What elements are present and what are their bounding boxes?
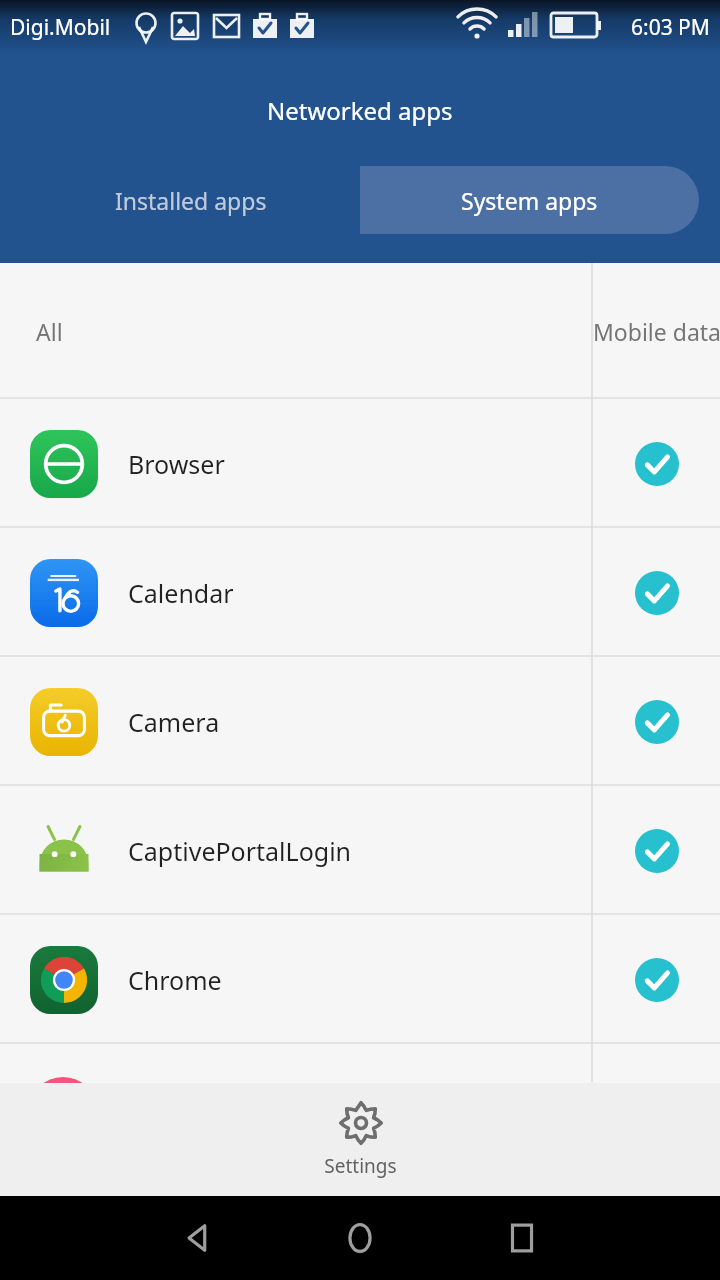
staticText: Chrome [128,963,222,997]
button[interactable]: Mobile data enabled for Chrome [635,958,679,1002]
button[interactable]: Mobile data enabled for Camera [635,700,679,744]
button[interactable]: Home [332,1210,388,1266]
staticText: All [36,316,63,347]
button[interactable]: Calendar [0,528,720,657]
button[interactable]: Mobile data enabled for Browser [635,442,679,486]
button[interactable]: Installed apps [21,166,360,234]
button[interactable]: Back [170,1210,226,1266]
staticText: Networked apps [267,94,453,127]
staticText: Mobile data [593,316,720,347]
staticText: Browser [128,447,225,481]
staticText: System apps [461,185,598,216]
staticText: Installed apps [115,185,267,216]
button[interactable]: Recent apps [494,1210,550,1266]
button[interactable]: Camera [0,657,720,786]
button[interactable]: Chrome [0,915,720,1044]
button[interactable]: CaptivePortalLogin [0,786,720,915]
staticText: 6:03 PM [631,13,710,42]
button[interactable]: System apps [360,166,699,234]
staticText: CaptivePortalLogin [128,834,352,868]
staticText: Settings [324,1153,397,1179]
button[interactable]: Browser [0,399,720,528]
button[interactable]: Settings [0,1083,720,1196]
staticText: Calendar [128,576,234,610]
staticText: Digi.Mobil [10,13,111,42]
button[interactable]: Mobile data enabled for Calendar [635,571,679,615]
button[interactable] [0,1044,720,1082]
staticText: Camera [128,705,220,739]
button[interactable]: Mobile data enabled for CaptivePortalLog… [635,829,679,873]
